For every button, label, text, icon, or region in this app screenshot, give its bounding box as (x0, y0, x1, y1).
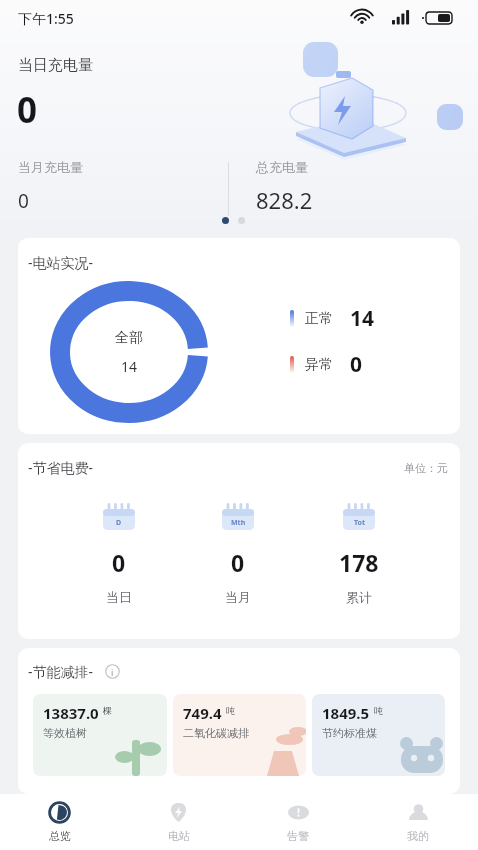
staticText: 当月充电量 (18, 159, 83, 175)
staticText: 0 (18, 188, 29, 214)
staticText: 节约标准煤 (322, 726, 377, 740)
staticText: i (111, 666, 114, 678)
staticText: -节省电费- (28, 458, 94, 477)
staticText: 0 (231, 547, 245, 578)
staticText: 告警 (287, 829, 309, 843)
staticText: 我的 (407, 829, 429, 843)
staticText: Mth (231, 518, 246, 528)
staticText: 正常 (305, 310, 333, 328)
staticText: 吨 (374, 705, 383, 716)
staticText: 0 (350, 350, 363, 379)
staticText: 总充电量 (256, 159, 308, 175)
staticText: 14 (121, 357, 138, 376)
staticText: 累计 (346, 589, 372, 605)
staticText: 当月 (225, 589, 251, 605)
staticText: 0 (17, 86, 38, 134)
button[interactable]: 749.4 (173, 694, 306, 776)
staticText: 1849.5 (322, 703, 370, 723)
staticText: -节能减排- (28, 662, 94, 681)
staticText: 0 (112, 547, 126, 578)
button[interactable]: 电站 (119, 794, 238, 850)
staticText: Tot (354, 518, 365, 528)
staticText: 749.4 (183, 703, 222, 723)
staticText: 等效植树 (43, 726, 87, 740)
staticText: 13837.0 (43, 703, 99, 723)
staticText: 电站 (168, 829, 190, 843)
button[interactable]: 总览 (0, 794, 119, 850)
button[interactable]: 告警 (238, 794, 358, 850)
button[interactable]: 我的 (358, 794, 478, 850)
staticText: -电站实况- (28, 253, 94, 272)
staticText: 吨 (226, 705, 235, 716)
staticText: 下午1:55 (18, 9, 74, 28)
staticText: 178 (339, 547, 379, 578)
button[interactable]: 说明 (105, 664, 120, 679)
staticText: D (116, 518, 122, 528)
staticText: 全部 (115, 329, 143, 347)
button[interactable]: 1849.5 (312, 694, 445, 776)
staticText: 当日充电量 (18, 56, 93, 75)
staticText: 单位：元 (404, 461, 448, 475)
staticText: 异常 (305, 356, 333, 374)
staticText: 棵 (103, 705, 112, 716)
button[interactable]: 13837.0 (33, 694, 167, 776)
staticText: 二氧化碳减排 (183, 726, 249, 740)
staticText: 828.2 (256, 185, 313, 215)
staticText: 总览 (49, 829, 71, 843)
staticText: 14 (350, 304, 375, 333)
staticText: 当日 (106, 589, 132, 605)
